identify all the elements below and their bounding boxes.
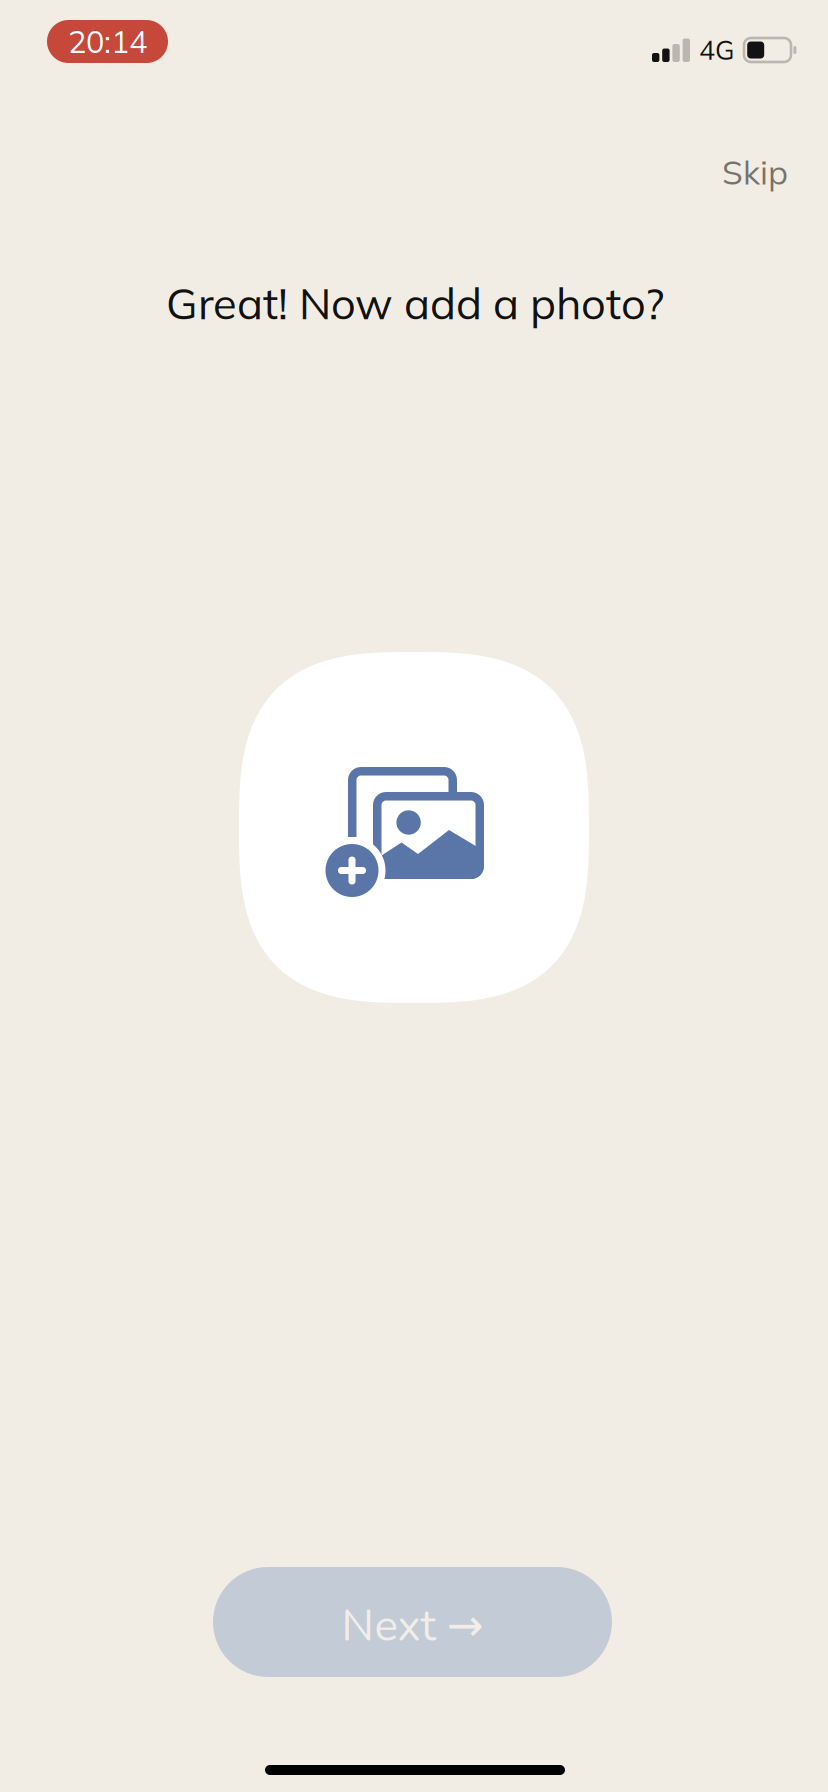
staticText: Great! Now add a photo? (166, 276, 664, 330)
staticText: Skip (722, 151, 788, 193)
button[interactable]: Next → (213, 1567, 612, 1677)
button[interactable]: Skip (690, 128, 820, 216)
button[interactable]: Add a photo (239, 652, 589, 1003)
staticText: 20:14 (68, 22, 147, 61)
staticText: 4G (699, 33, 734, 66)
staticText: Next → (341, 1596, 483, 1656)
